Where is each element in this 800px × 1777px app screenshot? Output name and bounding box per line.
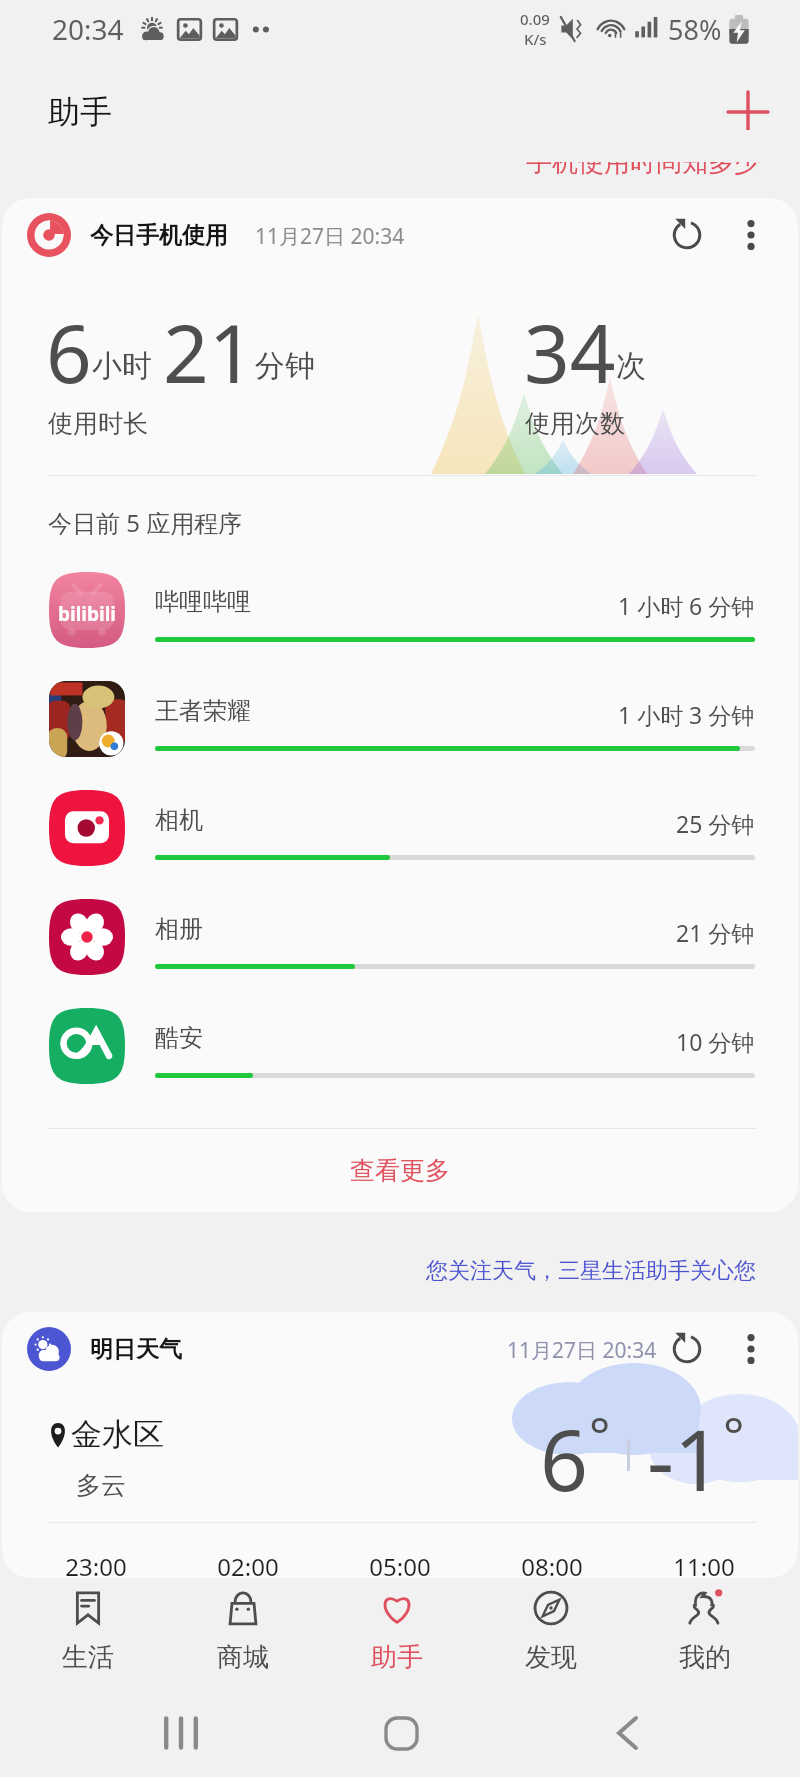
staticText: 58% bbox=[668, 11, 722, 48]
staticText: 发现 bbox=[525, 1641, 577, 1674]
staticText: 11月27日 20:34 bbox=[255, 222, 405, 251]
button[interactable]: Add bbox=[716, 80, 780, 144]
staticText: ° bbox=[589, 1401, 611, 1469]
staticText: 助手 bbox=[371, 1641, 423, 1674]
staticText: 酷安 bbox=[155, 1023, 203, 1053]
staticText: 0.09 bbox=[520, 9, 550, 29]
staticText: 11:00 bbox=[628, 1550, 780, 1578]
button[interactable]: More options bbox=[719, 1317, 783, 1381]
staticText: 08:00 bbox=[476, 1550, 628, 1578]
staticText: 王者荣耀 bbox=[155, 696, 251, 726]
staticText: 使用时长 bbox=[48, 408, 148, 439]
staticText: 小时 bbox=[92, 347, 152, 385]
staticText: 05:00 bbox=[324, 1550, 476, 1578]
button[interactable]: Back bbox=[567, 1703, 687, 1763]
staticText: 手机使用时间知多少 bbox=[0, 146, 760, 179]
staticText: 1 小时 6 分钟 bbox=[618, 590, 755, 621]
staticText: -1 bbox=[647, 1401, 723, 1509]
staticText: 今日手机使用 bbox=[90, 221, 228, 250]
button[interactable]: 发现 bbox=[474, 1578, 628, 1685]
staticText: 助手 bbox=[48, 92, 112, 132]
staticText: 次 bbox=[616, 347, 646, 385]
button[interactable]: Refresh bbox=[655, 203, 719, 267]
staticText: 20:34 bbox=[52, 10, 124, 48]
staticText: 21 分钟 bbox=[676, 917, 755, 948]
button[interactable]: 酷安 bbox=[42, 993, 762, 1093]
staticText: 多云 bbox=[76, 1470, 126, 1501]
staticText: 相册 bbox=[155, 914, 203, 944]
staticText: 6 bbox=[46, 297, 92, 406]
button[interactable]: 查看更多 bbox=[2, 1129, 798, 1212]
staticText: 使用次数 bbox=[525, 408, 625, 439]
button[interactable]: 生活 bbox=[10, 1578, 165, 1685]
staticText: 34 bbox=[524, 297, 616, 406]
button[interactable]: bilibili bbox=[42, 557, 762, 657]
staticText: 1 小时 3 分钟 bbox=[618, 699, 755, 730]
button[interactable]: Home bbox=[341, 1703, 461, 1763]
button[interactable]: Recents bbox=[121, 1703, 241, 1763]
staticText: 21 bbox=[163, 297, 255, 406]
staticText: 分钟 bbox=[255, 347, 315, 385]
staticText: 商城 bbox=[217, 1641, 269, 1674]
staticText: 10 分钟 bbox=[676, 1026, 755, 1057]
button[interactable]: 我的 bbox=[628, 1578, 782, 1685]
staticText: 23:00 bbox=[20, 1550, 172, 1578]
staticText: 今日前 5 应用程序 bbox=[48, 506, 243, 539]
staticText: bilibili bbox=[49, 601, 125, 627]
button[interactable]: 王者荣耀 bbox=[42, 666, 762, 766]
staticText: 生活 bbox=[62, 1641, 114, 1674]
button[interactable]: 商城 bbox=[165, 1578, 320, 1685]
staticText: K/s bbox=[524, 29, 547, 49]
staticText: 您关注天气，三星生活助手关心您 bbox=[0, 1257, 756, 1285]
staticText: 明日天气 bbox=[90, 1335, 182, 1364]
staticText: 查看更多 bbox=[350, 1155, 450, 1186]
button[interactable]: 相册 bbox=[42, 884, 762, 984]
staticText: 11月27日 20:34 bbox=[507, 1336, 657, 1365]
staticText: ° bbox=[723, 1401, 745, 1469]
staticText: 02:00 bbox=[172, 1550, 324, 1578]
staticText: 相机 bbox=[155, 805, 203, 835]
button[interactable]: 相机 bbox=[42, 775, 762, 875]
button[interactable]: 助手 bbox=[320, 1578, 474, 1685]
button[interactable]: Refresh bbox=[655, 1317, 719, 1381]
button[interactable]: More options bbox=[719, 203, 783, 267]
staticText: 金水区 bbox=[71, 1415, 164, 1454]
staticText: 我的 bbox=[679, 1641, 731, 1674]
staticText: 哔哩哔哩 bbox=[155, 587, 251, 617]
staticText: 25 分钟 bbox=[676, 808, 755, 839]
staticText: 6 bbox=[540, 1401, 589, 1509]
